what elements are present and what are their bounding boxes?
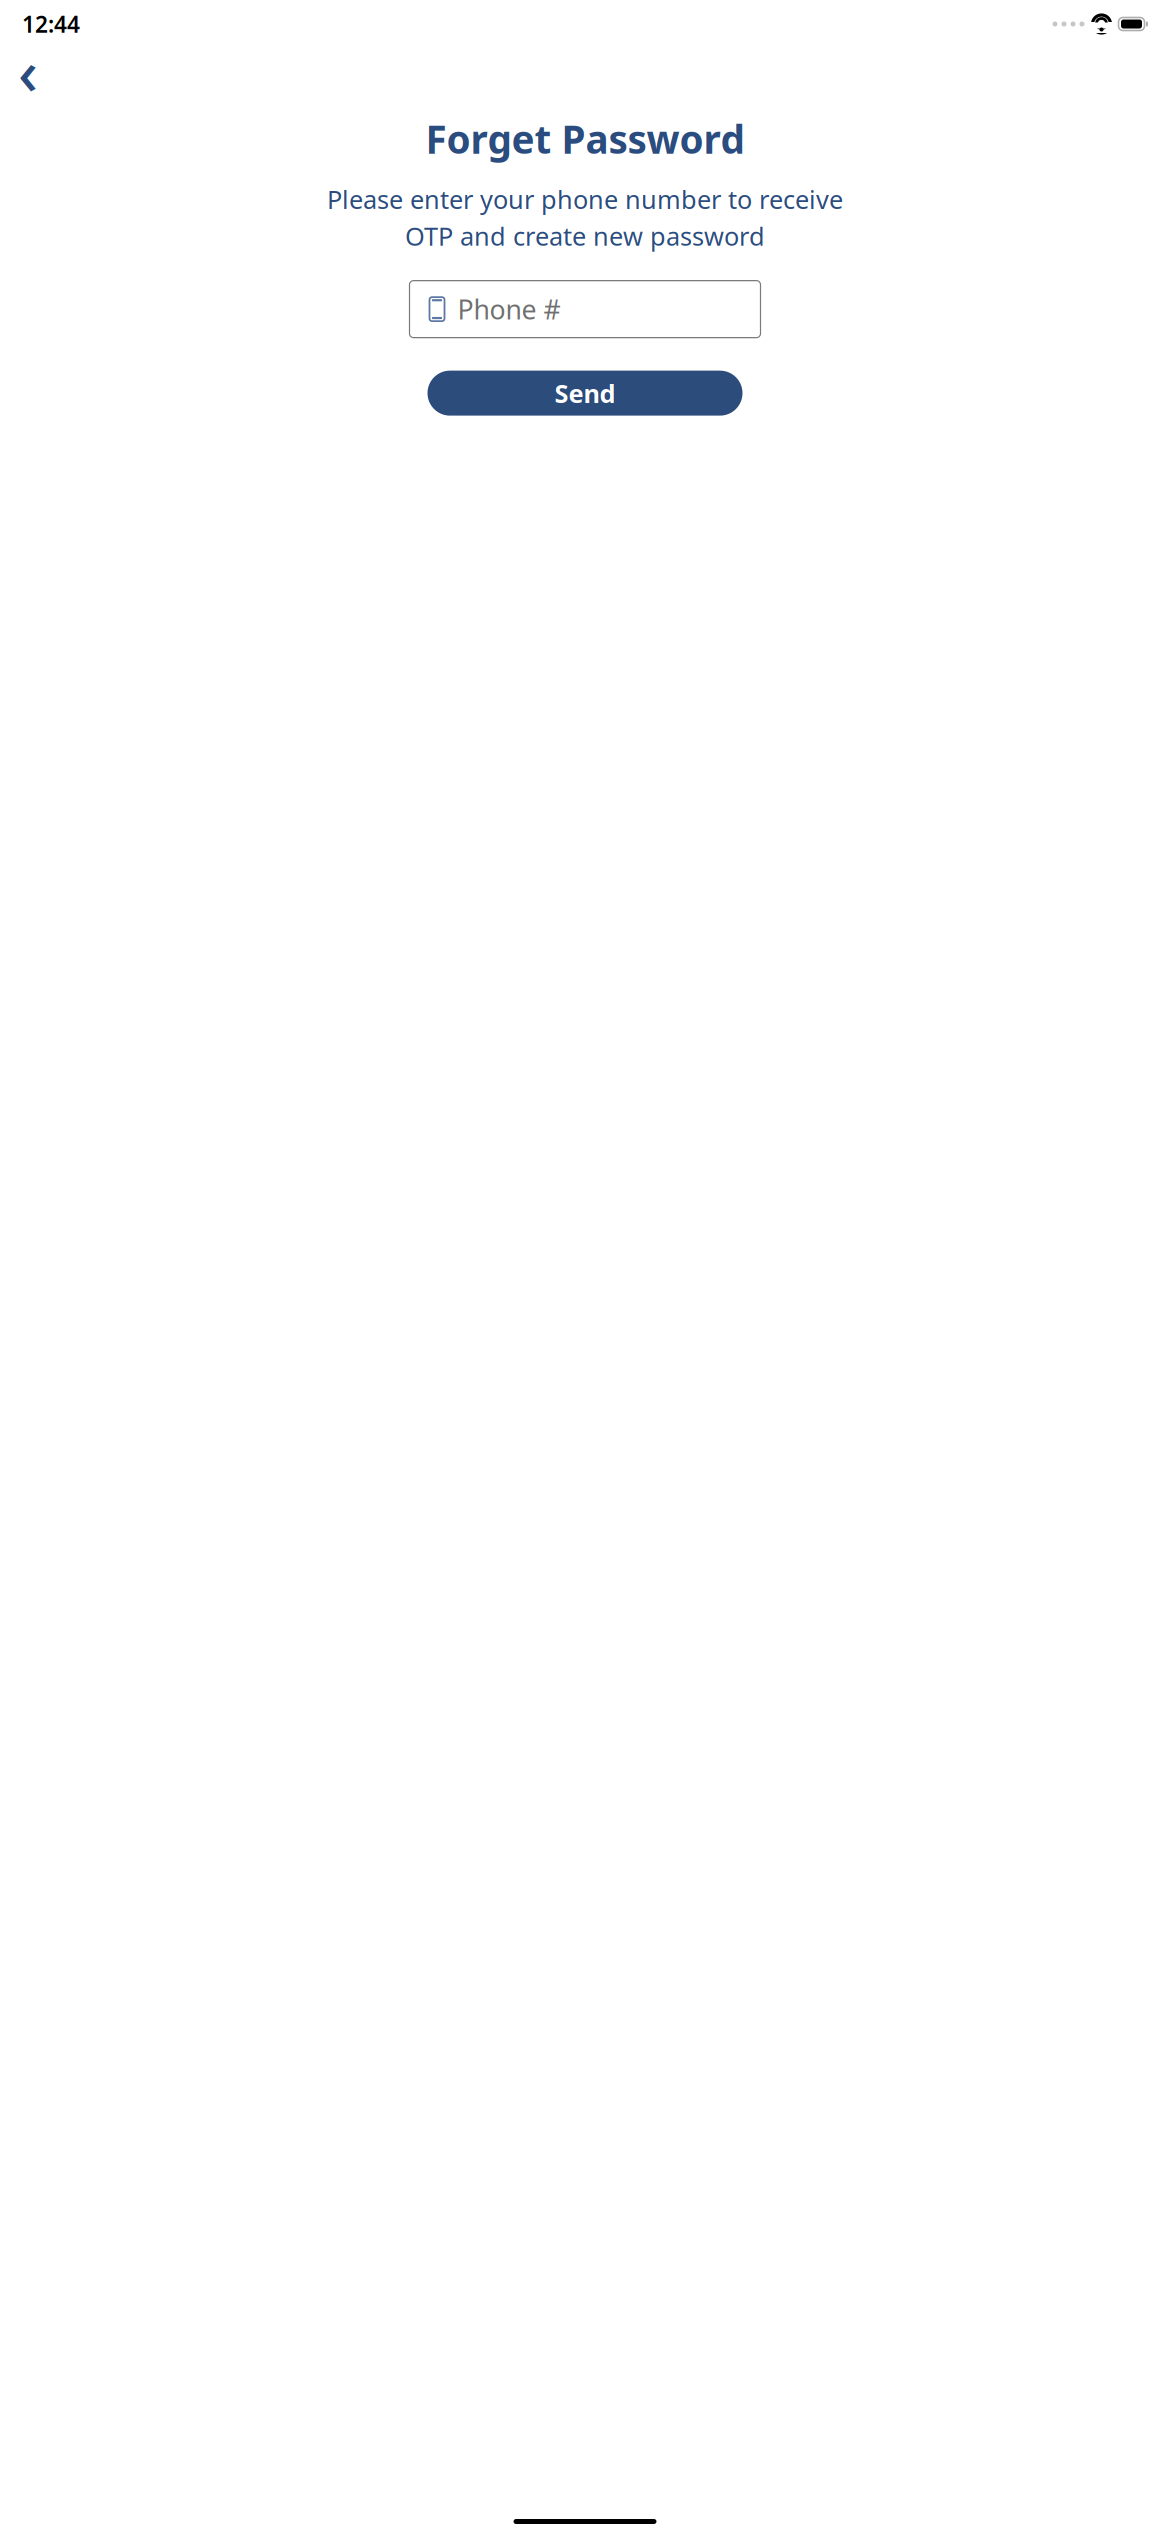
staticText: OTP and create new password bbox=[405, 219, 765, 253]
staticText: ‹ bbox=[18, 30, 38, 112]
staticText: Send bbox=[554, 376, 615, 410]
button[interactable]: Send bbox=[427, 371, 742, 416]
staticText: Please enter your phone number to receiv… bbox=[327, 182, 843, 216]
staticText: Forget Password bbox=[425, 113, 744, 164]
button[interactable]: Back bbox=[6, 49, 50, 93]
staticText: Phone # bbox=[457, 291, 560, 327]
staticText: 12:44 bbox=[22, 9, 80, 39]
